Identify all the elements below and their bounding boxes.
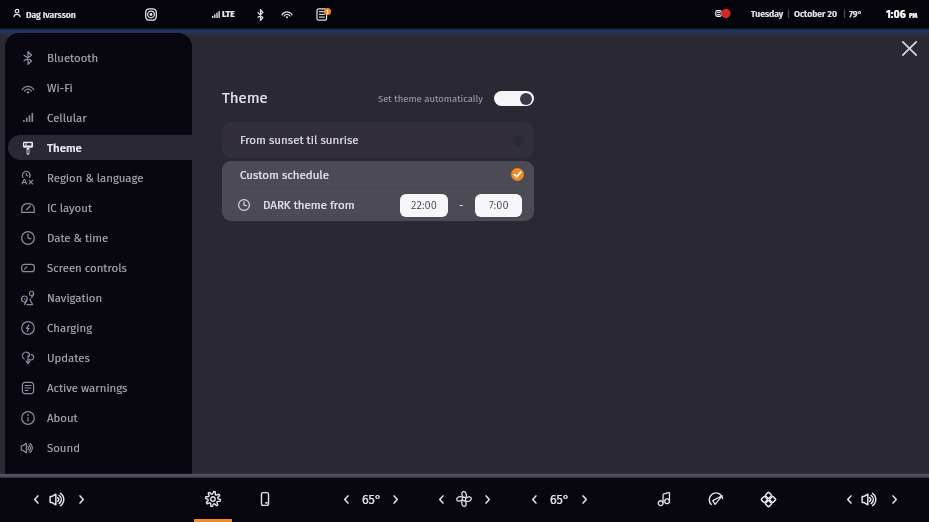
staticText: Date & time [47,231,109,245]
staticText: Tuesday [751,8,784,19]
button[interactable]: Decrease [27,490,45,508]
button[interactable]: Charging [8,315,192,340]
button[interactable]: Increase [72,490,90,508]
staticText: Navigation [47,291,103,305]
staticText: 65° [362,492,382,507]
staticText: DARK theme from [263,198,355,212]
staticText: 7:00 [489,199,509,212]
button[interactable]: Music [650,485,680,513]
staticText: Screen controls [47,261,127,275]
staticText: Updates [47,351,90,365]
button[interactable]: Set theme automatically toggle [494,91,534,106]
staticText: LTE [222,8,235,19]
staticText: Theme [47,141,82,155]
staticText: 65° [550,492,570,507]
staticText: Wi-Fi [47,81,73,95]
button[interactable]: Increase [885,490,903,508]
button[interactable]: Date & time [8,225,192,250]
button[interactable]: Sound [8,435,192,460]
button[interactable]: About [8,405,192,430]
staticText: October 20 [794,8,837,19]
button[interactable]: Decrease [337,490,355,508]
staticText: Active warnings [47,381,128,395]
staticText: About [47,411,78,425]
button[interactable]: Bluetooth [8,45,192,70]
staticText: Cellular [47,111,87,125]
staticText: 1:06 [886,7,906,21]
staticText: | [787,8,791,19]
button[interactable]: IC layout [8,195,192,220]
button[interactable]: Fan speed [449,485,479,513]
staticText: Sound [47,441,80,455]
button[interactable]: Custom schedule [222,161,534,188]
staticText: IC layout [47,201,93,215]
button[interactable]: Wi-Fi [8,75,192,100]
button[interactable]: Increase [575,490,593,508]
button[interactable]: Volume [855,485,885,513]
button[interactable]: Volume [43,485,73,513]
button[interactable]: Driver temperature [355,485,389,513]
staticText: Bluetooth [47,51,99,65]
staticText: PM [909,12,918,20]
button[interactable]: Phone [250,485,280,513]
button[interactable]: Decrease [525,490,543,508]
button[interactable]: Apps [753,485,783,513]
staticText: Region & language [47,171,144,185]
staticText: Custom schedule [240,168,329,182]
button[interactable]: Performance [701,485,731,513]
button[interactable]: Navigation [8,285,192,310]
staticText: - [459,199,464,212]
button[interactable]: Settings [198,485,228,513]
button[interactable]: Increase [386,490,404,508]
staticText: 79° [849,8,863,19]
staticText: From sunset til sunrise [240,133,359,147]
button[interactable]: Increase [478,490,496,508]
button[interactable]: Decrease [840,490,858,508]
button[interactable]: Region & language [8,165,192,190]
staticText: | [843,8,847,19]
staticText: Dag Ivarsson [26,9,76,20]
button[interactable]: Theme [8,135,192,160]
button[interactable]: 22:00 [400,194,448,217]
button[interactable]: 7:00 [475,194,522,217]
button[interactable]: Active warnings [8,375,192,400]
button[interactable]: Screen controls [8,255,192,280]
button[interactable]: Updates [8,345,192,370]
button[interactable]: Decrease [432,490,450,508]
staticText: Charging [47,321,93,335]
button[interactable]: Cellular [8,105,192,130]
staticText: Set theme automatically [378,93,483,104]
button[interactable]: From sunset til sunrise [222,122,534,158]
staticText: Theme [222,89,268,107]
button[interactable]: Passenger temperature [543,485,577,513]
button[interactable]: Close [893,32,925,64]
staticText: 22:00 [411,199,437,212]
